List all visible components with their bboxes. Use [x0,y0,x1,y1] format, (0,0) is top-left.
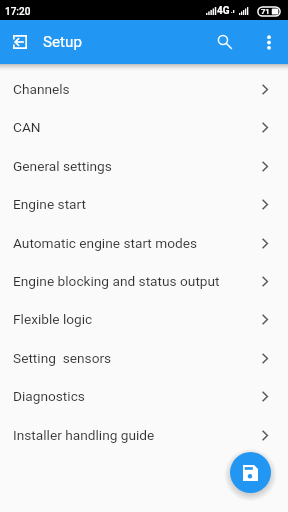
button[interactable]: General settings [0,147,288,185]
button[interactable]: CAN [0,108,288,146]
button[interactable]: Engine blocking and status output [0,262,288,300]
button[interactable]: Automatic engine start modes [0,224,288,262]
staticText: Engine start [13,196,87,212]
button[interactable]: Engine start [0,185,288,223]
staticText: Flexible logic [13,311,93,327]
button[interactable]: Setting sensors [0,339,288,377]
staticText: 17:20 [5,6,31,18]
staticText: General settings [13,158,112,174]
staticText: Diagnostics [13,388,85,404]
staticText: Setup [43,33,82,51]
button[interactable]: Flexible logic [0,300,288,338]
staticText: Engine blocking and status output [13,273,220,289]
staticText: Setting sensors [13,350,112,366]
button[interactable]: Search [207,24,243,60]
button[interactable]: Save [230,452,271,493]
staticText: Automatic engine start modes [13,235,198,251]
staticText: 71 [261,7,270,16]
button[interactable]: Channels [0,70,288,108]
button[interactable]: Diagnostics [0,377,288,415]
staticText: Installer handling guide [13,427,155,443]
staticText: CAN [13,119,41,135]
staticText: Channels [13,81,70,97]
button[interactable]: Back [6,28,34,56]
staticText: 4G [217,5,230,17]
button[interactable]: Installer handling guide [0,416,288,454]
button[interactable]: More options [254,27,284,57]
